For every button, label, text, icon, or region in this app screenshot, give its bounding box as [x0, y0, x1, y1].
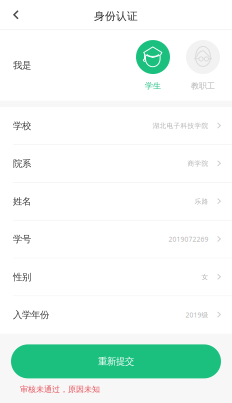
staticText: 学号: [13, 233, 31, 245]
staticText: 教职工: [191, 81, 215, 91]
button[interactable]: Back: [0, 0, 32, 29]
button[interactable]: 教职工: [181, 40, 225, 91]
button[interactable]: 院系: [0, 145, 232, 182]
button[interactable]: 学校: [0, 107, 232, 144]
button[interactable]: 入学年份: [0, 296, 232, 333]
staticText: 乐路: [194, 197, 208, 206]
staticText: 重新提交: [98, 356, 134, 367]
button[interactable]: 姓名: [0, 183, 232, 220]
staticText: 2019072269: [168, 235, 208, 244]
staticText: 院系: [13, 158, 31, 169]
button[interactable]: 学号: [0, 221, 232, 258]
staticText: 我是: [13, 60, 31, 71]
button[interactable]: 重新提交: [11, 344, 221, 378]
button[interactable]: 性别: [0, 258, 232, 296]
staticText: 学生: [145, 81, 161, 91]
staticText: 商学院: [187, 160, 208, 168]
staticText: 审核未通过，原因未知: [20, 384, 100, 394]
staticText: 女: [201, 273, 208, 281]
staticText: 性别: [13, 271, 31, 283]
staticText: 湖北电子科技学院: [152, 122, 208, 130]
staticText: 2019级: [185, 310, 208, 319]
button[interactable]: 学生: [131, 40, 175, 91]
staticText: 入学年份: [13, 309, 49, 321]
staticText: 学校: [13, 120, 31, 132]
staticText: 姓名: [13, 196, 31, 207]
staticText: 身份认证: [94, 10, 138, 23]
